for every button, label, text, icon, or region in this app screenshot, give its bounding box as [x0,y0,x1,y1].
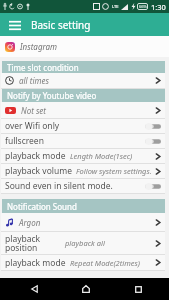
staticText: LTE [112,4,119,9]
staticText: Repeat Mode(2times) [70,258,153,268]
button[interactable]: playback position [1,232,165,254]
button[interactable]: over Wifi only [1,119,165,133]
staticText: Not set [21,105,46,116]
staticText: Length Mode(1sec) [70,151,153,161]
staticText: over Wifi only [5,120,60,132]
staticText: Basic setting [31,18,91,32]
staticText: playback all [65,238,153,248]
button[interactable]: playback mode [1,149,165,163]
staticText: all times [19,75,49,86]
button[interactable]: Argon [1,213,165,231]
button[interactable]: Recent apps [112,278,164,300]
button[interactable]: all times [1,73,165,88]
button[interactable]: Sound even in silent mode. [1,179,165,193]
button[interactable]: Back [9,278,60,300]
staticText: Sound even in silent mode. [5,180,113,192]
staticText: playback mode [5,150,66,162]
staticText: Instagram [20,41,58,52]
staticText: Argon [19,217,41,228]
staticText: playback volume [5,165,72,177]
staticText: playback position [5,233,41,254]
button[interactable]: Not set [1,102,165,118]
staticText: playback mode [5,257,66,269]
button[interactable]: playback mode [1,255,165,270]
staticText: 66% [139,4,147,9]
staticText: fullscreen [5,135,44,147]
button[interactable]: Home [60,278,112,300]
staticText: Follow system settings. [76,166,153,176]
staticText: Notify by Youtube video [7,90,97,101]
button[interactable]: Open navigation menu [6,16,24,34]
button[interactable]: playback volume [1,164,165,178]
staticText: Notification Sound [7,201,77,212]
staticText: Time slot condition [7,62,79,73]
staticText: 1:30 [151,2,166,12]
button[interactable]: fullscreen [1,134,165,148]
